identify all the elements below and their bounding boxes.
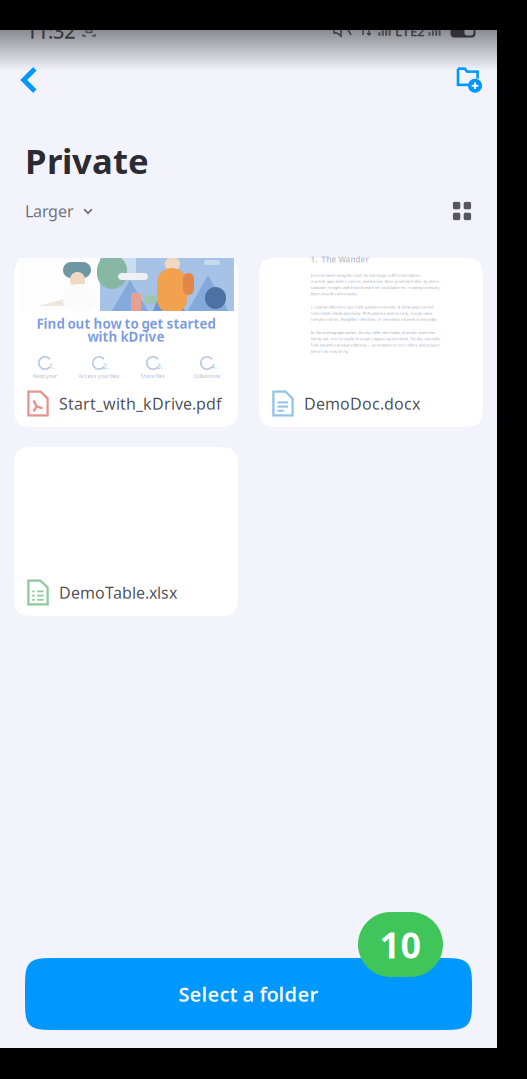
button[interactable]: Back [0, 62, 56, 98]
staticText: Share files [140, 372, 165, 380]
staticText: Larger [25, 200, 74, 222]
staticText: 3. [157, 362, 163, 370]
staticText: In small towns along the coast, the tide… [310, 272, 421, 278]
staticText: 10 [379, 921, 421, 968]
staticText: 1. [49, 362, 55, 370]
button[interactable]: DemoTable.xlsx [14, 447, 238, 616]
button[interactable]: 1. The Wander [259, 258, 483, 427]
staticText: Private [25, 137, 149, 183]
button[interactable]: Find out how to get started [14, 258, 238, 427]
button[interactable]: Larger [0, 191, 93, 231]
staticText: Ends but with a gradual softening — an i… [310, 342, 439, 347]
staticText: Select a folder [178, 981, 318, 1007]
staticText: Keep your [33, 372, 57, 380]
staticText: complex stories, thoughtful reflections,… [310, 317, 436, 322]
staticText: LTE2 [395, 22, 425, 40]
staticText: Start_with_kDrive.pdf [59, 393, 222, 414]
staticText: DemoDoc.docx [304, 393, 420, 414]
staticText: one by one, mirroring the first stars ap… [310, 336, 440, 341]
button[interactable]: New folder [439, 62, 497, 98]
staticText: Access your files [78, 372, 119, 380]
staticText: saltwater mingles with fresh bread from … [310, 285, 439, 290]
staticText: those seaside communities. [310, 291, 358, 296]
button[interactable]: Grid view [436, 194, 497, 228]
staticText: it also holds infinite possibility. With… [310, 310, 432, 316]
staticText: tomorrow may bring. [310, 348, 348, 354]
staticText: Find out how to get started [36, 315, 215, 332]
staticText: 4. [211, 362, 217, 370]
button[interactable]: Select a folder [25, 958, 472, 1030]
staticText: 11:32 [26, 18, 75, 44]
staticText: DemoTable.xlsx [59, 582, 177, 603]
staticText: Collaborate [193, 372, 220, 380]
staticText: Creativity often emerges in the quietest… [310, 304, 433, 309]
staticText: with kDrive [87, 328, 164, 345]
staticText: markets open before sunrise, and familia… [310, 279, 439, 284]
staticText: 1. The Wander [310, 254, 368, 265]
staticText: As the evening approaches, the sky shift… [310, 330, 435, 335]
staticText: 2. [103, 362, 109, 370]
